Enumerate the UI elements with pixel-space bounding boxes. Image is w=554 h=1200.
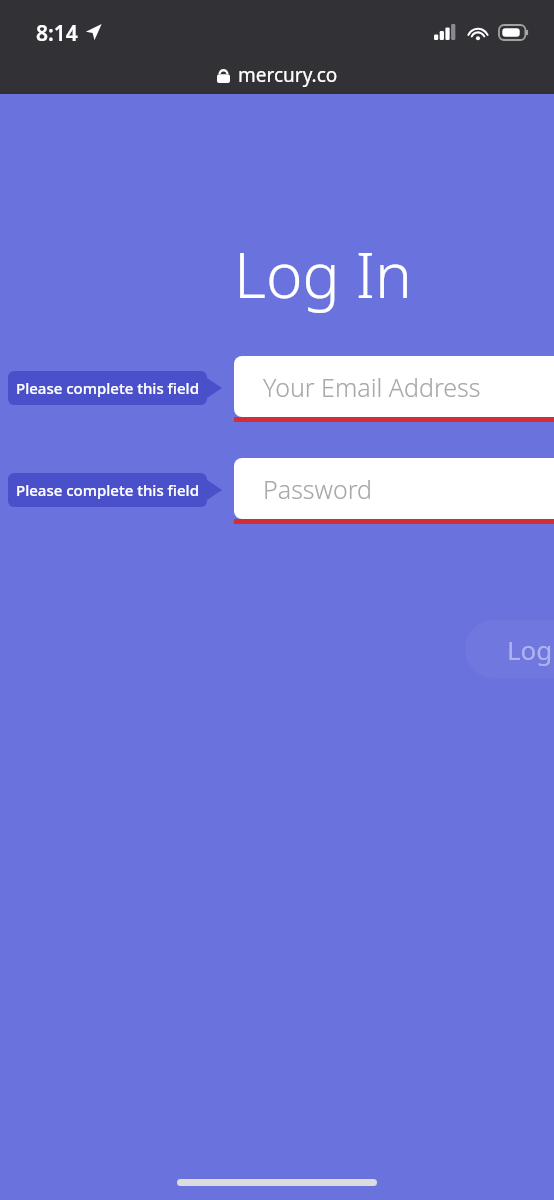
staticText: Please complete this field xyxy=(16,378,199,398)
button[interactable]: Password xyxy=(234,458,554,519)
staticText: Your Email Address xyxy=(263,370,481,404)
staticText: mercury.co xyxy=(238,62,338,88)
button[interactable]: Your Email Address xyxy=(234,356,554,417)
staticText: Log In xyxy=(234,232,412,316)
staticText: Please complete this field xyxy=(16,480,199,500)
staticText: Password xyxy=(263,472,372,506)
staticText: Log In xyxy=(507,632,554,667)
button[interactable]: Log In xyxy=(465,620,554,678)
staticText: 8:14 xyxy=(36,19,78,48)
